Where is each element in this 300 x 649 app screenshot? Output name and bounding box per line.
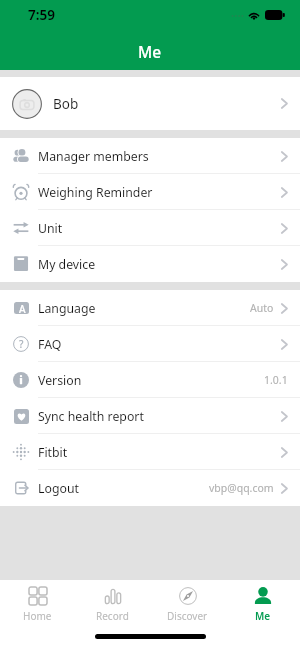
staticText: Fitbit <box>38 444 68 461</box>
button[interactable]: Logout <box>0 470 300 506</box>
button[interactable]: Bob <box>0 77 300 130</box>
staticText: A <box>19 302 26 314</box>
staticText: Me <box>255 609 271 623</box>
staticText: Unit <box>38 220 63 237</box>
staticText: vbp@qq.com <box>209 481 274 495</box>
button[interactable]: Home <box>0 580 75 625</box>
staticText: Manager members <box>38 148 149 165</box>
button[interactable]: My device <box>0 246 300 282</box>
staticText: FAQ <box>38 336 62 353</box>
staticText: Sync health report <box>38 408 144 425</box>
button[interactable]: Unit <box>0 210 300 246</box>
staticText: Me <box>138 41 162 62</box>
staticText: Weighing Reminder <box>38 184 153 201</box>
staticText: Record <box>96 609 129 623</box>
staticText: My device <box>38 256 96 273</box>
staticText: Discover <box>167 609 208 623</box>
button[interactable]: ? <box>0 326 300 362</box>
button[interactable]: Manager members <box>0 138 300 174</box>
staticText: 7:59 <box>28 6 55 24</box>
button[interactable]: Fitbit <box>0 434 300 470</box>
button[interactable]: Me <box>225 580 300 625</box>
staticText: ? <box>19 337 24 351</box>
button[interactable]: Version <box>0 362 300 398</box>
staticText: 1.0.1 <box>264 373 288 387</box>
button[interactable]: Sync health report <box>0 398 300 434</box>
button[interactable]: Weighing Reminder <box>0 174 300 210</box>
staticText: Version <box>38 372 82 389</box>
staticText: Language <box>38 300 96 317</box>
staticText: Bob <box>53 95 79 113</box>
staticText: Logout <box>38 480 79 497</box>
staticText: Auto <box>250 301 274 315</box>
button[interactable]: A <box>0 290 300 326</box>
button[interactable]: Record <box>75 580 150 625</box>
button[interactable]: Discover <box>150 580 225 625</box>
staticText: Home <box>23 609 52 623</box>
